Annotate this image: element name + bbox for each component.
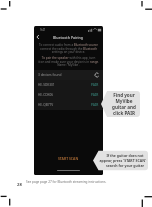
- staticText: 3 devices found: [38, 73, 62, 77]
- staticText: Bluetooth Pairing: [53, 35, 84, 40]
- staticText: 9:41: [40, 28, 46, 32]
- staticText: PAIR: [91, 93, 99, 97]
- staticText: PAIR: [91, 103, 99, 107]
- staticText: To pair the speaker with this app, turn …: [37, 56, 100, 66]
- button[interactable]: HE-SDK301: [34, 80, 103, 90]
- button[interactable]: HE-CDK06: [34, 90, 103, 100]
- staticText: HE-SDK301: [38, 83, 55, 87]
- staticText: PAIR: [91, 83, 99, 87]
- staticText: See page page 27 for Bluetooth streaming…: [26, 180, 107, 184]
- button[interactable]: START SCAN: [56, 154, 81, 163]
- button[interactable]: Back: [34, 33, 42, 41]
- staticText: HE-CDK06: [38, 93, 54, 97]
- button[interactable]: Refresh: [95, 73, 99, 77]
- staticText: If the guitar does not appear, press 'ST…: [99, 153, 147, 168]
- staticText: HE-QB77V: [38, 103, 54, 107]
- staticText: Find your MyVibe guitar and click PAIR: [112, 92, 136, 116]
- staticText: 28: [17, 182, 22, 188]
- staticText: START SCAN: [58, 156, 79, 161]
- button[interactable]: HE-QB77V: [34, 100, 103, 110]
- staticText: To connect audio from a Bluetooth source…: [37, 43, 100, 53]
